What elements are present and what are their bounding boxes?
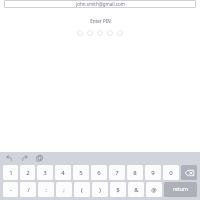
button[interactable]: ; [56, 182, 72, 197]
button[interactable]: 9 [145, 165, 161, 180]
staticText: : [45, 186, 47, 194]
button[interactable]: Undo [4, 153, 15, 164]
staticText: & [134, 186, 139, 194]
button[interactable]: / [20, 182, 36, 197]
staticText: / [27, 186, 30, 194]
staticText: ) [99, 186, 101, 194]
button[interactable]: 7 [109, 165, 125, 180]
button[interactable]: - [3, 182, 18, 197]
staticText: 3 [43, 169, 47, 177]
staticText: $ [116, 186, 120, 194]
button[interactable]: ( [74, 182, 90, 197]
button[interactable]: 2 [20, 165, 35, 180]
staticText: 8 [133, 169, 137, 177]
button[interactable]: 5 [73, 165, 89, 180]
button[interactable]: Backspace [181, 165, 197, 180]
button[interactable]: 6 [91, 165, 107, 180]
button[interactable]: : [38, 182, 54, 197]
button[interactable]: john.smith@gmail.com [4, 0, 196, 8]
button[interactable]: Paste [34, 153, 45, 164]
button[interactable]: & [128, 182, 144, 197]
staticText: 5 [79, 169, 83, 177]
button[interactable]: 4 [55, 165, 71, 180]
button[interactable]: $ [110, 182, 126, 197]
staticText: 2 [26, 169, 30, 177]
staticText: - [10, 186, 12, 194]
staticText: return [173, 186, 188, 193]
staticText: ; [63, 186, 65, 194]
button[interactable]: 1 [3, 165, 18, 180]
staticText: 4 [61, 169, 65, 177]
button[interactable]: 8 [127, 165, 143, 180]
button[interactable]: 0 [163, 165, 179, 180]
staticText: 7 [115, 169, 119, 177]
button[interactable]: ) [92, 182, 108, 197]
staticText: 0 [169, 169, 173, 177]
button[interactable]: @ [146, 182, 162, 197]
staticText: ( [81, 186, 83, 194]
button[interactable]: 3 [37, 165, 53, 180]
staticText: @ [151, 186, 157, 194]
staticText: 6 [97, 169, 101, 177]
staticText: 1 [9, 169, 13, 177]
button[interactable]: return [164, 182, 197, 197]
staticText: Enter PIN [90, 18, 111, 24]
staticText: john.smith@gmail.com [76, 1, 125, 7]
button[interactable]: Redo [19, 153, 30, 164]
staticText: 9 [151, 169, 155, 177]
